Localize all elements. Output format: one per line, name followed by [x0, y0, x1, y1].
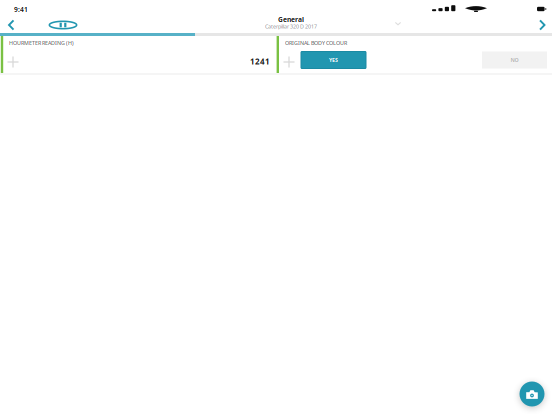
button[interactable]: Add comment to hourmeter reading — [2, 51, 24, 73]
button[interactable]: Pause inspection — [43, 14, 83, 36]
button[interactable]: NO — [482, 51, 547, 68]
button[interactable]: Add comment to original body colour — [278, 51, 300, 73]
staticText: 1241 — [250, 56, 270, 67]
button[interactable]: YES — [301, 51, 366, 68]
staticText: 9:41 — [14, 5, 28, 14]
staticText: HOURMETER READING (H) — [9, 39, 74, 47]
button[interactable]: Back — [1, 14, 21, 36]
staticText: Caterpillar 320 D 2017 — [265, 23, 317, 30]
staticText: NO — [510, 56, 518, 64]
staticText: ORIGINAL BODY COLOUR — [285, 39, 347, 47]
button[interactable]: Next — [532, 14, 552, 36]
button[interactable]: Take photo — [519, 381, 544, 406]
staticText: General — [278, 15, 304, 24]
staticText: YES — [329, 56, 338, 64]
button[interactable]: Change asset — [389, 15, 407, 31]
